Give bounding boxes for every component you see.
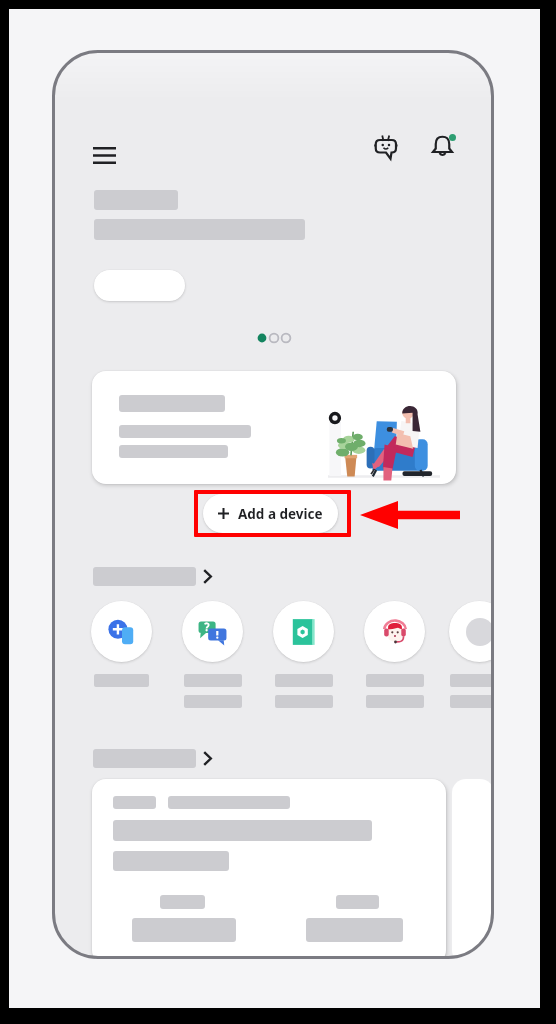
button[interactable]: Notifications <box>421 125 463 167</box>
button[interactable]: See more <box>93 567 212 586</box>
button[interactable]: Shortcut 3 <box>258 601 349 708</box>
button[interactable]: Assistant <box>365 125 407 167</box>
button[interactable]: Shortcut 1 <box>76 601 167 687</box>
button[interactable]: Shortcut 5 <box>440 601 494 708</box>
button[interactable]: Card <box>92 779 446 959</box>
button[interactable]: Shortcut 4 <box>349 601 440 708</box>
button[interactable]: Add a device <box>203 494 338 533</box>
button[interactable]: Shortcut 2 <box>167 601 258 708</box>
button[interactable]: Device card <box>92 371 456 484</box>
button[interactable]: See more <box>93 749 212 768</box>
button[interactable]: Action <box>94 270 185 301</box>
button[interactable]: Menu <box>83 134 125 176</box>
staticText: Add a device <box>238 505 323 523</box>
